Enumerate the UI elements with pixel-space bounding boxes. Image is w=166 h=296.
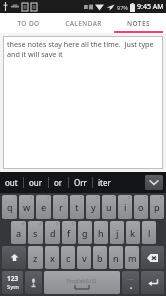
button[interactable]: 5	[70, 195, 84, 219]
staticText: o	[138, 201, 144, 213]
staticText: or	[54, 177, 63, 188]
staticText: 4	[64, 195, 67, 200]
button[interactable]: 4	[53, 195, 68, 219]
staticText: 8	[128, 195, 131, 200]
button[interactable]: Expand suggestions	[145, 175, 163, 190]
button[interactable]: Backspace	[141, 246, 164, 269]
button[interactable]: -	[126, 221, 140, 244]
staticText: q	[7, 201, 13, 213]
staticText: iter	[98, 177, 111, 188]
staticText: d	[50, 227, 56, 239]
button[interactable]: @	[11, 221, 26, 244]
staticText: '	[73, 246, 74, 251]
staticText: 2	[30, 195, 33, 200]
staticText: z	[33, 252, 38, 264]
staticText: .	[130, 280, 133, 291]
staticText: TO DO	[17, 19, 40, 28]
staticText: 1	[13, 195, 16, 200]
staticText: 5	[80, 195, 83, 200]
button[interactable]: (	[94, 221, 108, 244]
staticText: Sym	[7, 283, 19, 291]
button[interactable]: Enter	[141, 271, 164, 294]
button[interactable]: 7	[102, 195, 116, 219]
staticText: r	[59, 201, 63, 213]
staticText: k	[130, 227, 136, 239]
staticText: a	[16, 227, 22, 239]
staticText: 97%	[117, 4, 128, 11]
staticText: ?	[136, 246, 138, 251]
staticText: 9:45 AM	[137, 2, 164, 12]
staticText: )	[121, 221, 123, 226]
button[interactable]: TO DO	[0, 13, 56, 33]
button[interactable]: 6	[86, 195, 100, 219]
staticText: Orr	[74, 177, 87, 188]
staticText: e	[41, 201, 47, 213]
button[interactable]: ?	[125, 246, 139, 269]
button[interactable]: Orr	[69, 172, 92, 193]
button[interactable]: 2	[19, 195, 34, 219]
button[interactable]: Symbols	[2, 271, 23, 294]
staticText: 7	[112, 195, 115, 200]
staticText: (	[105, 221, 107, 226]
staticText: w	[23, 201, 31, 213]
staticText: -	[137, 221, 139, 226]
staticText: $	[56, 221, 59, 226]
staticText: y	[91, 201, 96, 213]
button[interactable]: )	[110, 221, 124, 244]
staticText: our	[29, 177, 43, 188]
button[interactable]: %	[62, 221, 76, 244]
button[interactable]: our	[24, 172, 48, 193]
button[interactable]: iter	[93, 172, 116, 193]
button[interactable]: Space	[44, 271, 120, 294]
staticText: 6	[96, 195, 99, 200]
button[interactable]: !	[109, 246, 123, 269]
button[interactable]: CALENDAR	[56, 13, 111, 33]
button[interactable]: 3	[36, 195, 51, 219]
staticText: m	[128, 252, 137, 264]
staticText: CALENDAR	[65, 19, 102, 28]
staticText: NOTES	[127, 19, 150, 28]
button[interactable]: '	[61, 246, 75, 269]
staticText: c	[66, 252, 71, 264]
staticText: f	[67, 227, 71, 239]
button[interactable]: $	[45, 221, 60, 244]
staticText: p	[154, 201, 160, 213]
button[interactable]: "	[45, 246, 59, 269]
staticText: g	[82, 227, 88, 239]
staticText: "	[56, 246, 58, 251]
button[interactable]: 9	[134, 195, 148, 219]
staticText: l	[148, 227, 151, 239]
staticText: 0	[160, 195, 163, 200]
staticText: these notes stay here all the time. Just…	[7, 39, 159, 59]
staticText: 123	[7, 274, 19, 283]
staticText: t	[75, 201, 79, 213]
button[interactable]: these notes stay here all the time. Just…	[4, 37, 162, 168]
button[interactable]: out	[0, 172, 23, 193]
button[interactable]: 0	[150, 195, 164, 219]
staticText: /	[89, 221, 91, 226]
staticText: x	[50, 252, 55, 264]
button[interactable]: ;	[93, 246, 107, 269]
button[interactable]: Voice input	[25, 271, 42, 294]
staticText: n	[113, 252, 119, 264]
button[interactable]: l	[142, 221, 156, 244]
staticText: h	[98, 227, 104, 239]
button[interactable]: 8	[118, 195, 132, 219]
button[interactable]: :	[77, 246, 91, 269]
button[interactable]: NOTES	[111, 13, 166, 33]
staticText: 3	[47, 195, 50, 200]
staticText: %	[71, 221, 75, 226]
staticText: out	[5, 177, 18, 188]
staticText: s	[33, 227, 38, 239]
button[interactable]: *	[28, 246, 43, 269]
button[interactable]: 1	[2, 195, 17, 219]
button[interactable]: #	[28, 221, 43, 244]
button[interactable]: Shift	[2, 246, 26, 269]
button[interactable]: or	[49, 172, 68, 193]
staticText: i	[124, 201, 127, 213]
button[interactable]: Period	[122, 271, 139, 294]
staticText: English(US)	[67, 277, 97, 284]
staticText: !	[120, 246, 122, 251]
button[interactable]: /	[78, 221, 92, 244]
staticText: v	[82, 252, 87, 264]
